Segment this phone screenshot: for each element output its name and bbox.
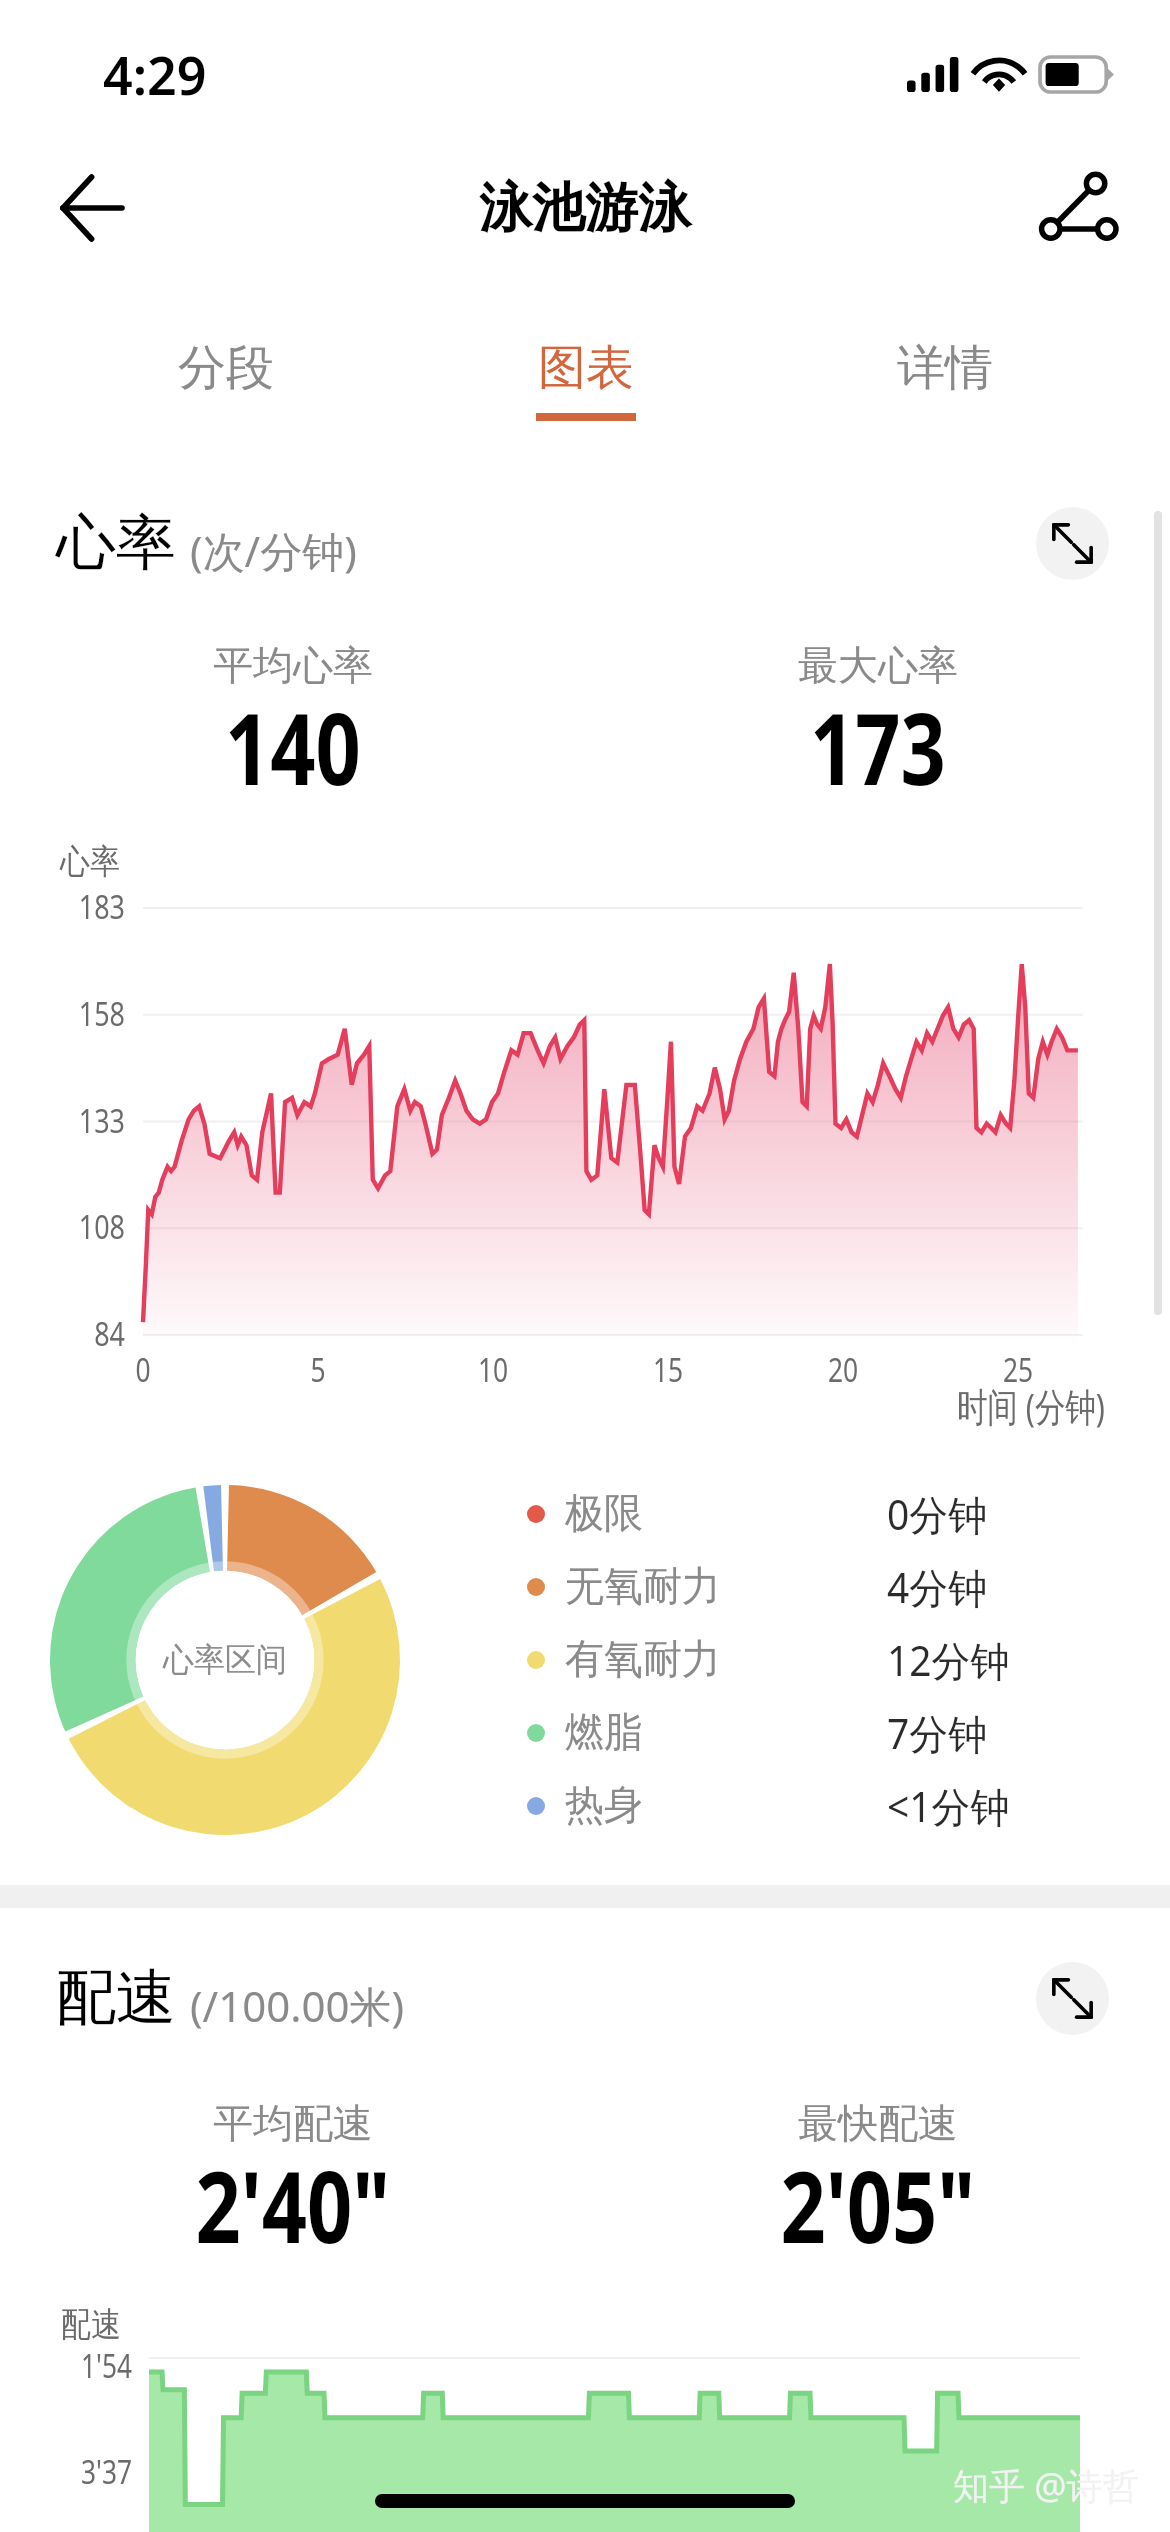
staticText: (次/分钟) — [190, 522, 357, 579]
staticText: 知乎 @诗哲 — [953, 2461, 1139, 2510]
staticText: 3'37 — [24, 2450, 132, 2494]
staticText: 84 — [20, 1312, 125, 1356]
staticText: 最大心率 — [798, 640, 958, 690]
staticText: 2'05" — [780, 2137, 976, 2272]
staticText: 平均心率 — [213, 640, 373, 690]
staticText: 0分钟 — [887, 1486, 988, 1542]
staticText: 0 — [115, 1347, 171, 1392]
staticText: 140 — [225, 679, 361, 814]
staticText: 158 — [20, 992, 125, 1036]
staticText: 极限 — [565, 1488, 643, 1540]
staticText: 4分钟 — [887, 1559, 988, 1615]
staticText: 20 — [815, 1347, 871, 1392]
button[interactable]: Expand chart — [1036, 507, 1109, 580]
staticText: 无氧耐力 — [565, 1561, 721, 1613]
button[interactable]: Back — [36, 153, 146, 263]
button[interactable]: Expand chart — [1036, 1962, 1109, 2035]
staticText: 25 — [990, 1347, 1046, 1392]
staticText: 133 — [20, 1099, 125, 1143]
staticText: 4:29 — [103, 39, 207, 110]
staticText: 108 — [20, 1205, 125, 1249]
staticText: 配速 — [61, 2303, 121, 2346]
staticText: 10 — [465, 1347, 521, 1392]
staticText: 心率 — [60, 840, 120, 883]
staticText: 183 — [20, 885, 125, 929]
button[interactable]: 详情 — [765, 300, 1124, 425]
staticText: 心率 — [56, 505, 176, 581]
staticText: 有氧耐力 — [565, 1634, 721, 1686]
staticText: 图表 — [538, 338, 634, 398]
staticText: 1'54 — [24, 2344, 132, 2388]
staticText: 2'40" — [195, 2137, 391, 2272]
staticText: 12分钟 — [887, 1632, 1009, 1688]
staticText: 平均配速 — [213, 2098, 373, 2148]
staticText: (/100.00米) — [190, 1977, 405, 2034]
staticText: 7分钟 — [887, 1705, 988, 1761]
staticText: 泳池游泳 — [479, 175, 691, 242]
staticText: 173 — [810, 679, 946, 814]
staticText: 热身 — [565, 1780, 643, 1832]
staticText: 详情 — [897, 338, 993, 398]
button[interactable]: 图表 — [406, 300, 765, 425]
staticText: 5 — [290, 1347, 346, 1392]
staticText: 配速 — [56, 1960, 176, 2036]
staticText: 燃脂 — [565, 1707, 643, 1759]
staticText: 15 — [640, 1347, 696, 1392]
button[interactable]: Share — [1023, 153, 1133, 263]
staticText: <1分钟 — [887, 1778, 1009, 1834]
staticText: 分段 — [178, 338, 274, 398]
staticText: 最快配速 — [798, 2098, 958, 2148]
staticText: 时间 (分钟) — [957, 1379, 1105, 1432]
button[interactable]: 分段 — [46, 300, 406, 425]
staticText: 心率区间 — [163, 1639, 287, 1681]
